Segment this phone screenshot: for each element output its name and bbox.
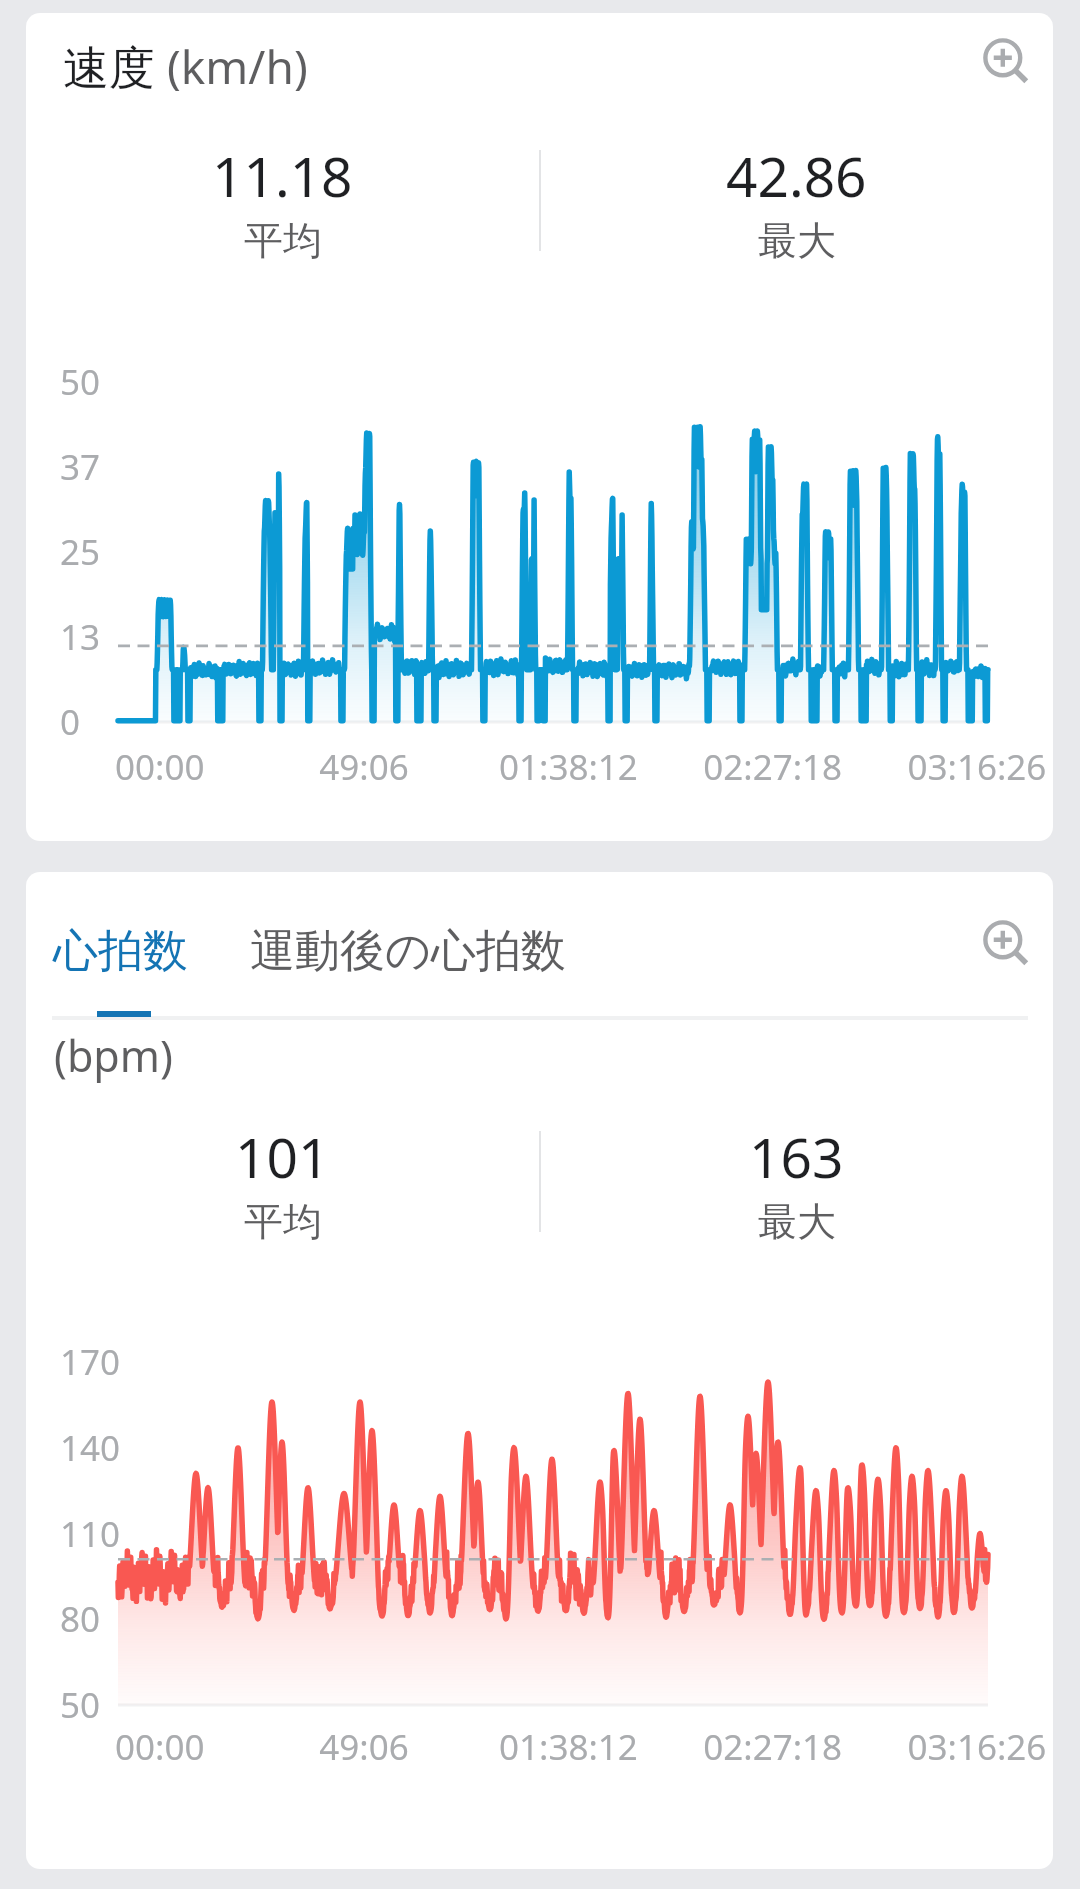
button[interactable]: Zoom in [968,23,1048,103]
staticText: 運動後の心拍数 [250,923,567,980]
staticText: 163 [749,1119,844,1194]
staticText: 11.18 [212,138,353,213]
staticText: 最大 [758,216,836,265]
button[interactable]: 運動後の心拍数 [250,923,567,980]
button[interactable]: 心拍数 [53,923,188,980]
staticText: (km/h) [167,35,308,98]
staticText: 平均 [244,216,322,265]
staticText: 速度 [63,35,167,98]
staticText: 平均 [244,1197,322,1246]
staticText: 最大 [758,1197,836,1246]
staticText: 101 [235,1119,330,1194]
button[interactable]: Zoom in [968,905,1048,985]
staticText: 心拍数 [53,923,188,980]
staticText: 42.86 [726,138,867,213]
staticText: (bpm) [54,1026,173,1085]
